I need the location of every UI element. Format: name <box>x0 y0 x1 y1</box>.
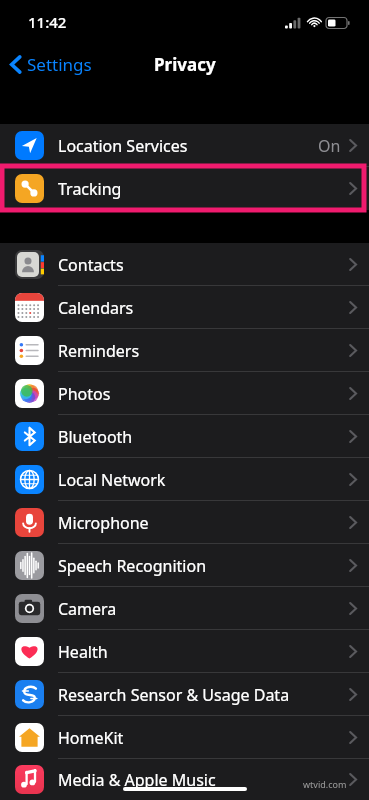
staticText: Contacts <box>58 254 124 276</box>
button[interactable]: Microphone <box>0 501 369 544</box>
staticText: Camera <box>58 598 117 620</box>
staticText: Calendars <box>58 297 134 319</box>
button[interactable]: Tracking <box>0 167 369 210</box>
button[interactable]: Reminders <box>0 329 369 372</box>
button[interactable]: Health <box>0 630 369 673</box>
staticText: Health <box>58 641 108 663</box>
staticText: Research Sensor & Usage Data <box>58 684 290 706</box>
button[interactable]: Settings <box>6 49 96 80</box>
button[interactable]: Photos <box>0 372 369 415</box>
staticText: On <box>318 135 341 157</box>
button[interactable]: Camera <box>0 587 369 630</box>
staticText: Microphone <box>58 512 149 534</box>
button[interactable]: Research Sensor & Usage Data <box>0 673 369 716</box>
staticText: Reminders <box>58 340 140 362</box>
staticText: Tracking <box>58 178 122 200</box>
button[interactable]: Calendars <box>0 286 369 329</box>
button[interactable]: Contacts <box>0 243 369 286</box>
staticText: Bluetooth <box>58 426 133 448</box>
staticText: Local Network <box>58 469 166 491</box>
staticText: wtvid.com <box>303 778 347 790</box>
button[interactable]: HomeKit <box>0 716 369 759</box>
staticText: Settings <box>27 53 92 76</box>
staticText: Photos <box>58 383 111 405</box>
staticText: Media & Apple Music <box>58 769 216 791</box>
staticText: Location Services <box>58 135 188 157</box>
staticText: 11:42 <box>28 12 67 32</box>
button[interactable]: Local Network <box>0 458 369 501</box>
button[interactable]: Media & Apple Music <box>0 759 369 800</box>
button[interactable]: Location Services <box>0 124 369 167</box>
staticText: Speech Recognition <box>58 555 207 577</box>
button[interactable]: Speech Recognition <box>0 544 369 587</box>
staticText: HomeKit <box>58 727 124 749</box>
button[interactable]: Bluetooth <box>0 415 369 458</box>
staticText: Privacy <box>154 53 216 76</box>
